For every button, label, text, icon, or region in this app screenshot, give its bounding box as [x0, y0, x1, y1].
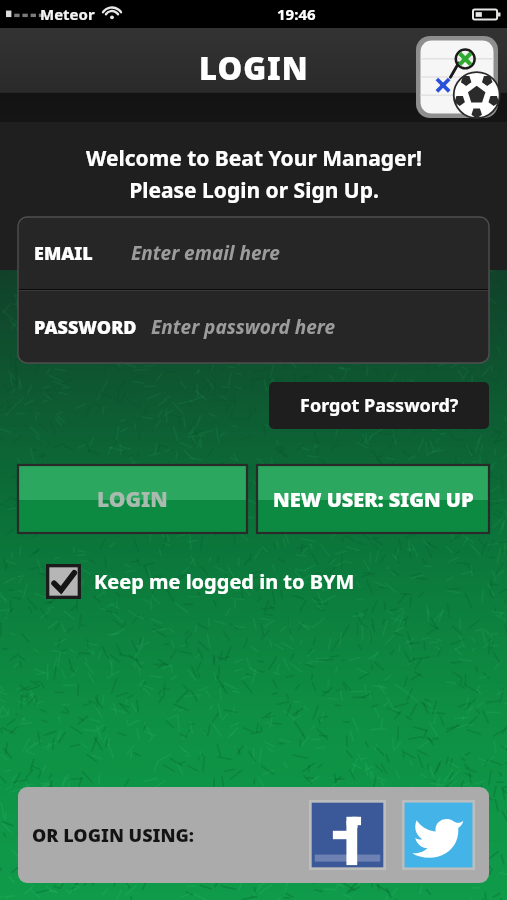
button[interactable]: LOGIN	[18, 465, 247, 533]
button[interactable]: NEW USER: SIGN UP	[257, 465, 489, 533]
button[interactable]: Login with Twitter	[402, 800, 475, 870]
staticText: PASSWORD	[34, 315, 137, 340]
staticText: LOGIN	[97, 485, 168, 514]
staticText: Keep me logged in to BYM	[94, 568, 355, 595]
button[interactable]: Beat Your Manager app icon	[416, 36, 498, 118]
staticText: EMAIL	[34, 241, 93, 266]
staticText: Forgot Password?	[300, 393, 459, 418]
button[interactable]: Login with Facebook	[309, 800, 386, 870]
staticText: 19:46	[277, 4, 316, 24]
staticText: Meteor	[40, 4, 95, 24]
button[interactable]: PASSWORD	[18, 291, 489, 363]
button[interactable]: EMAIL	[18, 217, 489, 289]
button[interactable]: Forgot Password?	[269, 382, 489, 429]
staticText: Enter password here	[151, 314, 335, 340]
staticText: Enter email here	[131, 240, 280, 266]
staticText: NEW USER: SIGN UP	[273, 486, 474, 513]
staticText: OR LOGIN USING:	[32, 823, 195, 848]
staticText: Please Login or Sign Up.	[129, 176, 379, 205]
button[interactable]: Keep me logged in to BYM	[46, 564, 507, 599]
staticText: Welcome to Beat Your Manager!	[86, 144, 422, 173]
staticText: LOGIN	[199, 47, 309, 89]
